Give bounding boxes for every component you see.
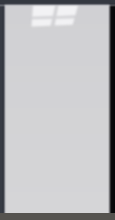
other: Phone screen bbox=[3, 3, 111, 213]
